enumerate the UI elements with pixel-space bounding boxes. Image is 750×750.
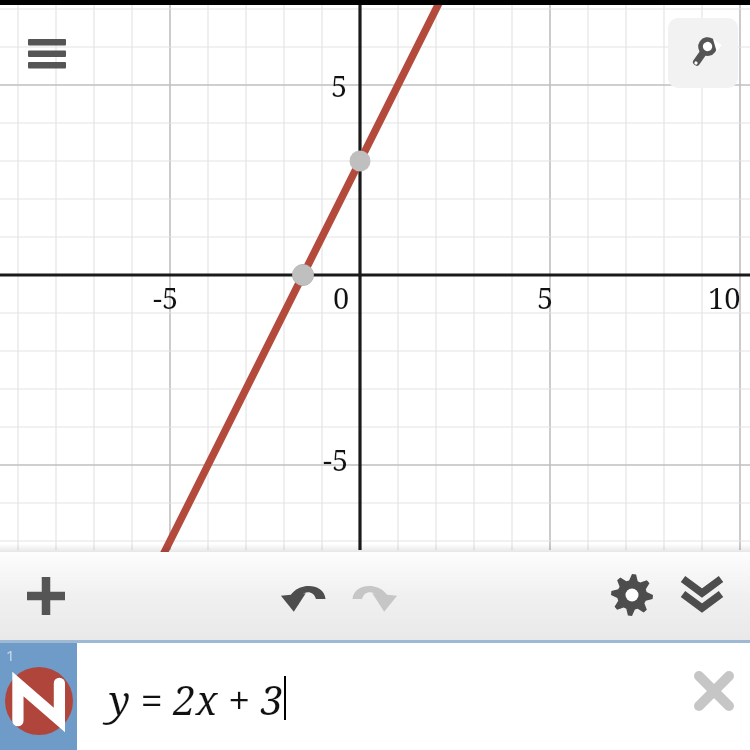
staticText: 10 (708, 278, 741, 317)
button[interactable]: Graph settings (668, 18, 738, 88)
button[interactable]: Delete expression (678, 643, 750, 750)
button[interactable]: y = 2x + 3 (77, 643, 678, 750)
staticText: 5 (537, 278, 554, 317)
staticText: 1 (6, 645, 15, 665)
button[interactable]: Undo (272, 564, 334, 626)
button[interactable]: Settings (601, 564, 663, 626)
staticText: 5 (331, 66, 348, 105)
staticText: 0 (333, 278, 350, 317)
staticText: y = 2x + 3 (109, 672, 283, 726)
staticText: -5 (323, 440, 349, 479)
button[interactable]: Hide keypad (671, 564, 733, 626)
button[interactable]: Menu (18, 28, 76, 80)
staticText: -5 (153, 278, 179, 317)
button[interactable]: Redo (344, 564, 406, 626)
button[interactable]: Expression 1 color (0, 643, 77, 750)
button[interactable]: Add expression (14, 564, 78, 628)
